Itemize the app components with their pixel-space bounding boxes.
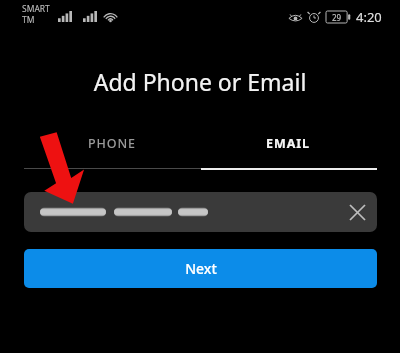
staticText: 29 bbox=[332, 12, 342, 23]
button[interactable]: EMAIL bbox=[200, 135, 376, 152]
staticText: Add Phone or Email bbox=[0, 66, 400, 97]
other: Wi-Fi bbox=[104, 10, 117, 23]
other: Alarm set bbox=[308, 11, 320, 23]
staticText: 4:20 bbox=[356, 8, 382, 26]
staticText: SMART bbox=[22, 3, 50, 15]
other: Signal strength bbox=[58, 11, 72, 22]
other: Signal strength bbox=[83, 11, 97, 22]
button[interactable]: Next bbox=[24, 249, 377, 288]
button[interactable]: PHONE bbox=[24, 135, 200, 152]
staticText: PHONE bbox=[88, 135, 136, 152]
button[interactable]: Clear text bbox=[337, 192, 377, 232]
button[interactable]: Clear text bbox=[24, 192, 377, 232]
staticText: TM bbox=[22, 14, 35, 26]
other: Eye comfort bbox=[288, 12, 303, 23]
staticText: EMAIL bbox=[266, 135, 310, 152]
staticText: Next bbox=[185, 259, 217, 278]
other: Battery 29 percent bbox=[326, 11, 350, 23]
